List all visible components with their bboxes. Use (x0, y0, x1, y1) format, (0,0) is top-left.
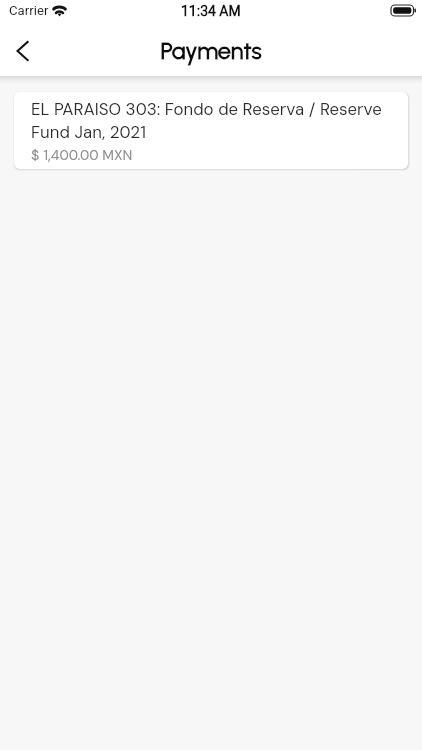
button[interactable]: EL PARAISO 303: Fondo de Reserva / Reser… (14, 92, 408, 169)
button[interactable]: Back (0, 28, 46, 74)
staticText: Payments (160, 37, 262, 65)
staticText: Carrier (9, 3, 49, 18)
staticText: $ 1,400.00 MXN (31, 146, 133, 164)
staticText: EL PARAISO 303: Fondo de Reserva / Reser… (31, 98, 394, 143)
staticText: 11:34 AM (181, 3, 241, 19)
